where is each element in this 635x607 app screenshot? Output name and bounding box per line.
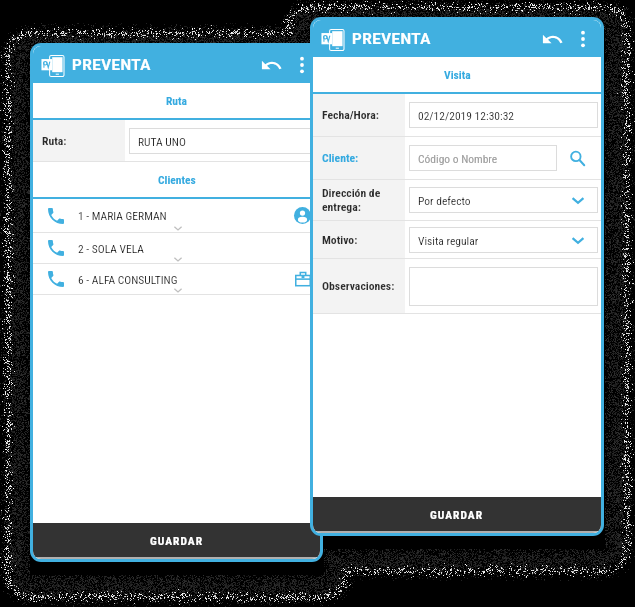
staticText: Motivo: [322, 233, 358, 247]
button[interactable]: 6 - ALFA CONSULTING [33, 264, 320, 294]
staticText: Observaciones: [322, 279, 395, 293]
button[interactable]: 02/12/2019 12:30:32 [409, 102, 598, 128]
button[interactable]: Código o Nombre [409, 145, 557, 171]
button[interactable]: Undo [256, 50, 286, 80]
staticText: Por defecto [418, 194, 471, 207]
button[interactable]: RUTA UNO [129, 128, 317, 154]
button[interactable]: 1 - MARIA GERMAN [33, 199, 320, 232]
button[interactable]: Buscar [557, 144, 598, 172]
staticText: Fecha/Hora: [322, 108, 379, 122]
button[interactable]: More options [570, 26, 596, 52]
staticText: 6 - ALFA CONSULTING [78, 273, 178, 286]
staticText: Clientes [158, 173, 196, 186]
staticText: 02/12/2019 12:30:32 [418, 109, 515, 122]
button[interactable]: GUARDAR [313, 497, 601, 531]
button[interactable]: GUARDAR [33, 523, 320, 557]
button[interactable]: More options [289, 52, 315, 78]
staticText: Código o Nombre [418, 152, 498, 165]
staticText: PREVENTA [72, 56, 151, 74]
staticText: Dirección de entrega: [322, 186, 381, 214]
button[interactable]: 2 - SOLA VELA [33, 233, 320, 263]
button[interactable]: Visita regular [409, 227, 598, 253]
button[interactable]: Undo [537, 24, 567, 54]
staticText: 1 - MARIA GERMAN [78, 209, 167, 222]
staticText: Ruta [166, 94, 187, 107]
staticText: Visita regular [418, 234, 479, 247]
staticText: GUARDAR [150, 534, 204, 547]
staticText: 2 - SOLA VELA [78, 242, 144, 255]
button[interactable]: Visita [313, 57, 601, 92]
staticText: Ruta: [42, 134, 67, 148]
button[interactable] [409, 267, 598, 306]
button[interactable]: Por defecto [409, 187, 598, 213]
button[interactable]: Clientes [33, 162, 320, 197]
staticText: PREVENTA [352, 30, 431, 48]
staticText: Cliente: [322, 151, 359, 165]
staticText: Visita [444, 68, 471, 81]
staticText: GUARDAR [430, 508, 484, 521]
staticText: RUTA UNO [138, 135, 186, 148]
button[interactable]: Ruta [33, 83, 320, 118]
